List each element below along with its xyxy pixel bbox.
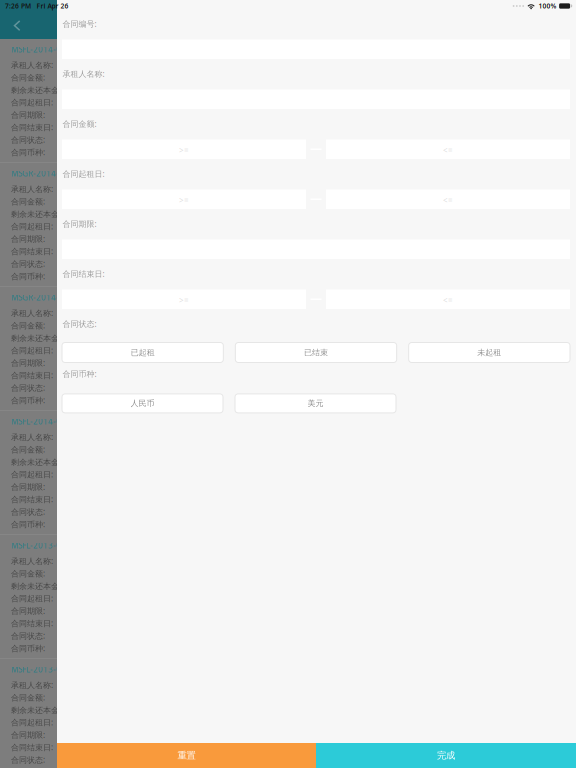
staticText: 合同状态: [62,318,96,329]
staticText: 合同结束日: [11,742,53,752]
button[interactable]: 重置 [57,743,316,768]
staticText: 合同状态: [11,630,45,641]
staticText: 合同期限: [11,233,45,244]
button[interactable]: Back [2,14,34,39]
staticText: 合同状态: [11,134,45,145]
staticText: 合同起租日: [11,345,53,356]
staticText: 合同起租日: [11,593,53,604]
staticText: 美元 [307,398,323,408]
staticText: 合同币种: [11,519,45,529]
staticText: 承租人名称: [62,68,104,79]
staticText: 已结束 [304,348,328,357]
button[interactable]: 美元 [235,394,396,413]
staticText: 7:26 PM [5,2,31,10]
staticText: 合同结束日: [11,618,53,628]
staticText: MSFL-2013-0 [11,664,61,675]
staticText: 合同金额: [11,444,45,455]
staticText: 剩余未还本金: [11,705,61,715]
staticText: 合同期限: [11,729,45,740]
staticText: 承租人名称: [11,184,53,194]
staticText: 合同金额: [62,118,96,129]
staticText: 人民币 [130,398,154,408]
staticText: 合同币种: [11,271,45,281]
staticText: 合同起租日: [11,469,53,480]
staticText: 合同结束日: [11,122,53,132]
button[interactable]: 已结束 [235,342,397,362]
staticText: <= [443,145,453,156]
staticText: MSFL-2013-0 [11,540,61,551]
staticText: 承租人名称: [11,60,53,70]
button[interactable]: 人民币 [62,394,223,413]
staticText: >= [179,295,189,306]
staticText: 合同金额: [11,320,45,331]
staticText: 合同编号: [62,18,96,29]
staticText: <= [443,195,453,206]
staticText: 合同币种: [11,147,45,157]
staticText: 承租人名称: [11,308,53,318]
staticText: 合同期限: [11,605,45,616]
staticText: 合同金额: [11,196,45,207]
staticText: 合同期限: [11,481,45,492]
staticText: 未起租 [477,348,501,357]
staticText: 合同币种: [11,643,45,653]
staticText: MSFL-2014-0 [11,416,61,427]
staticText: 合同金额: [11,72,45,83]
staticText: 100% [539,2,557,10]
staticText: 合同期限: [11,109,45,120]
staticText: 合同起租日: [11,717,53,728]
button[interactable]: 未起租 [409,342,570,362]
staticText: <= [443,295,453,306]
staticText: 合同起租日: [11,221,53,232]
staticText: 承租人名称: [11,556,53,566]
staticText: 剩余未还本金: [11,581,61,591]
staticText: 合同结束日: [11,246,53,256]
staticText: 剩余未还本金: [11,457,61,467]
staticText: 剩余未还本金: [11,333,61,343]
staticText: 合同状态: [11,506,45,517]
staticText: Fri Apr 26 [36,2,68,10]
staticText: MSGR-2014-0 [11,292,64,303]
staticText: 完成 [437,750,455,761]
staticText: 重置 [177,750,195,761]
staticText: 已起租 [131,348,155,357]
staticText: >= [179,145,189,156]
staticText: 剩余未还本金: [11,85,61,95]
staticText: 剩余未还本金: [11,209,61,219]
staticText: MSGR-2014-0 [11,168,64,179]
staticText: 合同结束日: [62,268,104,279]
button[interactable]: 已起租 [62,342,223,362]
staticText: 合同起租日: [11,97,53,108]
staticText: 合同期限: [62,218,96,229]
staticText: 合同币种: [11,395,45,405]
staticText: MSFL-2014-0 [11,44,61,55]
staticText: 合同金额: [11,568,45,579]
staticText: 承租人名称: [11,432,53,442]
staticText: 承租人名称: [11,680,53,690]
staticText: 合同状态: [11,258,45,269]
staticText: 合同结束日: [11,370,53,380]
button[interactable]: 完成 [316,743,576,768]
staticText: 合同金额: [11,692,45,703]
staticText: 合同起租日: [62,168,104,179]
staticText: 合同结束日: [11,494,53,504]
staticText: 合同币种: [62,368,96,379]
staticText: 合同状态: [11,382,45,393]
staticText: 合同状态: [11,754,45,765]
staticText: 合同期限: [11,357,45,368]
staticText: >= [179,195,189,206]
